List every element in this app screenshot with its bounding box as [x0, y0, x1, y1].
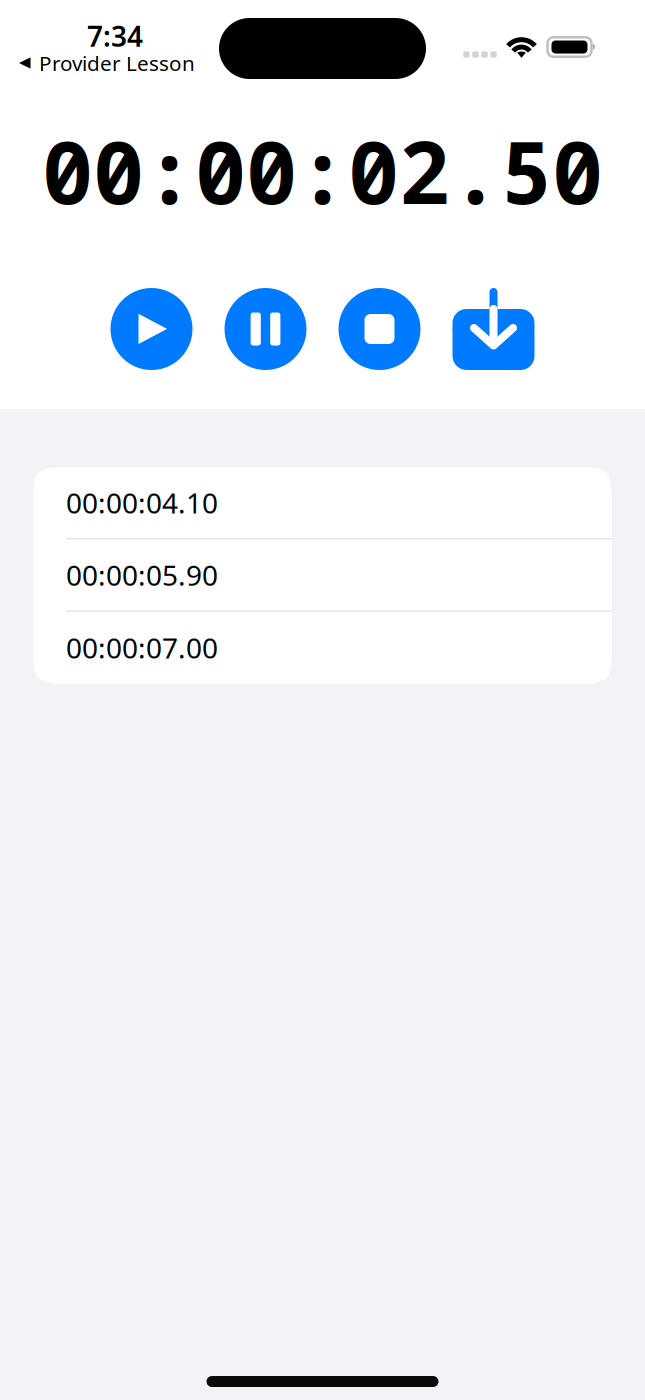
- button[interactable]: Start: [110, 288, 192, 370]
- button[interactable]: Save lap: [452, 288, 534, 370]
- staticText: 00:00:04.10: [66, 484, 218, 522]
- button[interactable]: 00:00:04.10: [33, 467, 612, 539]
- staticText: 00:00:07.00: [66, 629, 218, 667]
- staticText: 00:00:05.90: [66, 556, 218, 594]
- staticText: 7:34: [87, 17, 143, 55]
- button[interactable]: 00:00:05.90: [33, 539, 612, 612]
- button[interactable]: 00:00:07.00: [33, 612, 612, 684]
- button[interactable]: Stop: [338, 288, 420, 370]
- staticText: 00:00:02.50: [42, 113, 603, 229]
- staticText: Provider Lesson: [39, 49, 195, 77]
- button[interactable]: Provider Lesson: [0, 50, 195, 76]
- button[interactable]: Pause: [224, 288, 306, 370]
